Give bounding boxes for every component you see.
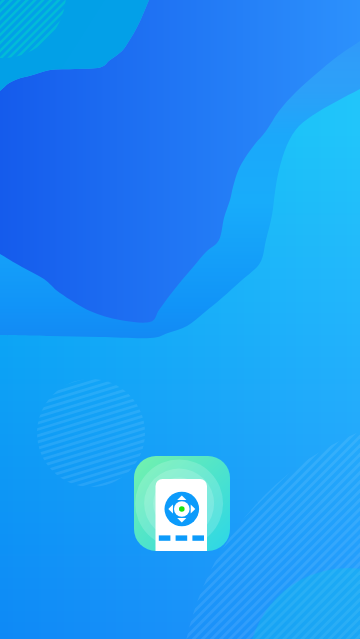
button[interactable]: Remote Control app bbox=[0, 0, 360, 639]
